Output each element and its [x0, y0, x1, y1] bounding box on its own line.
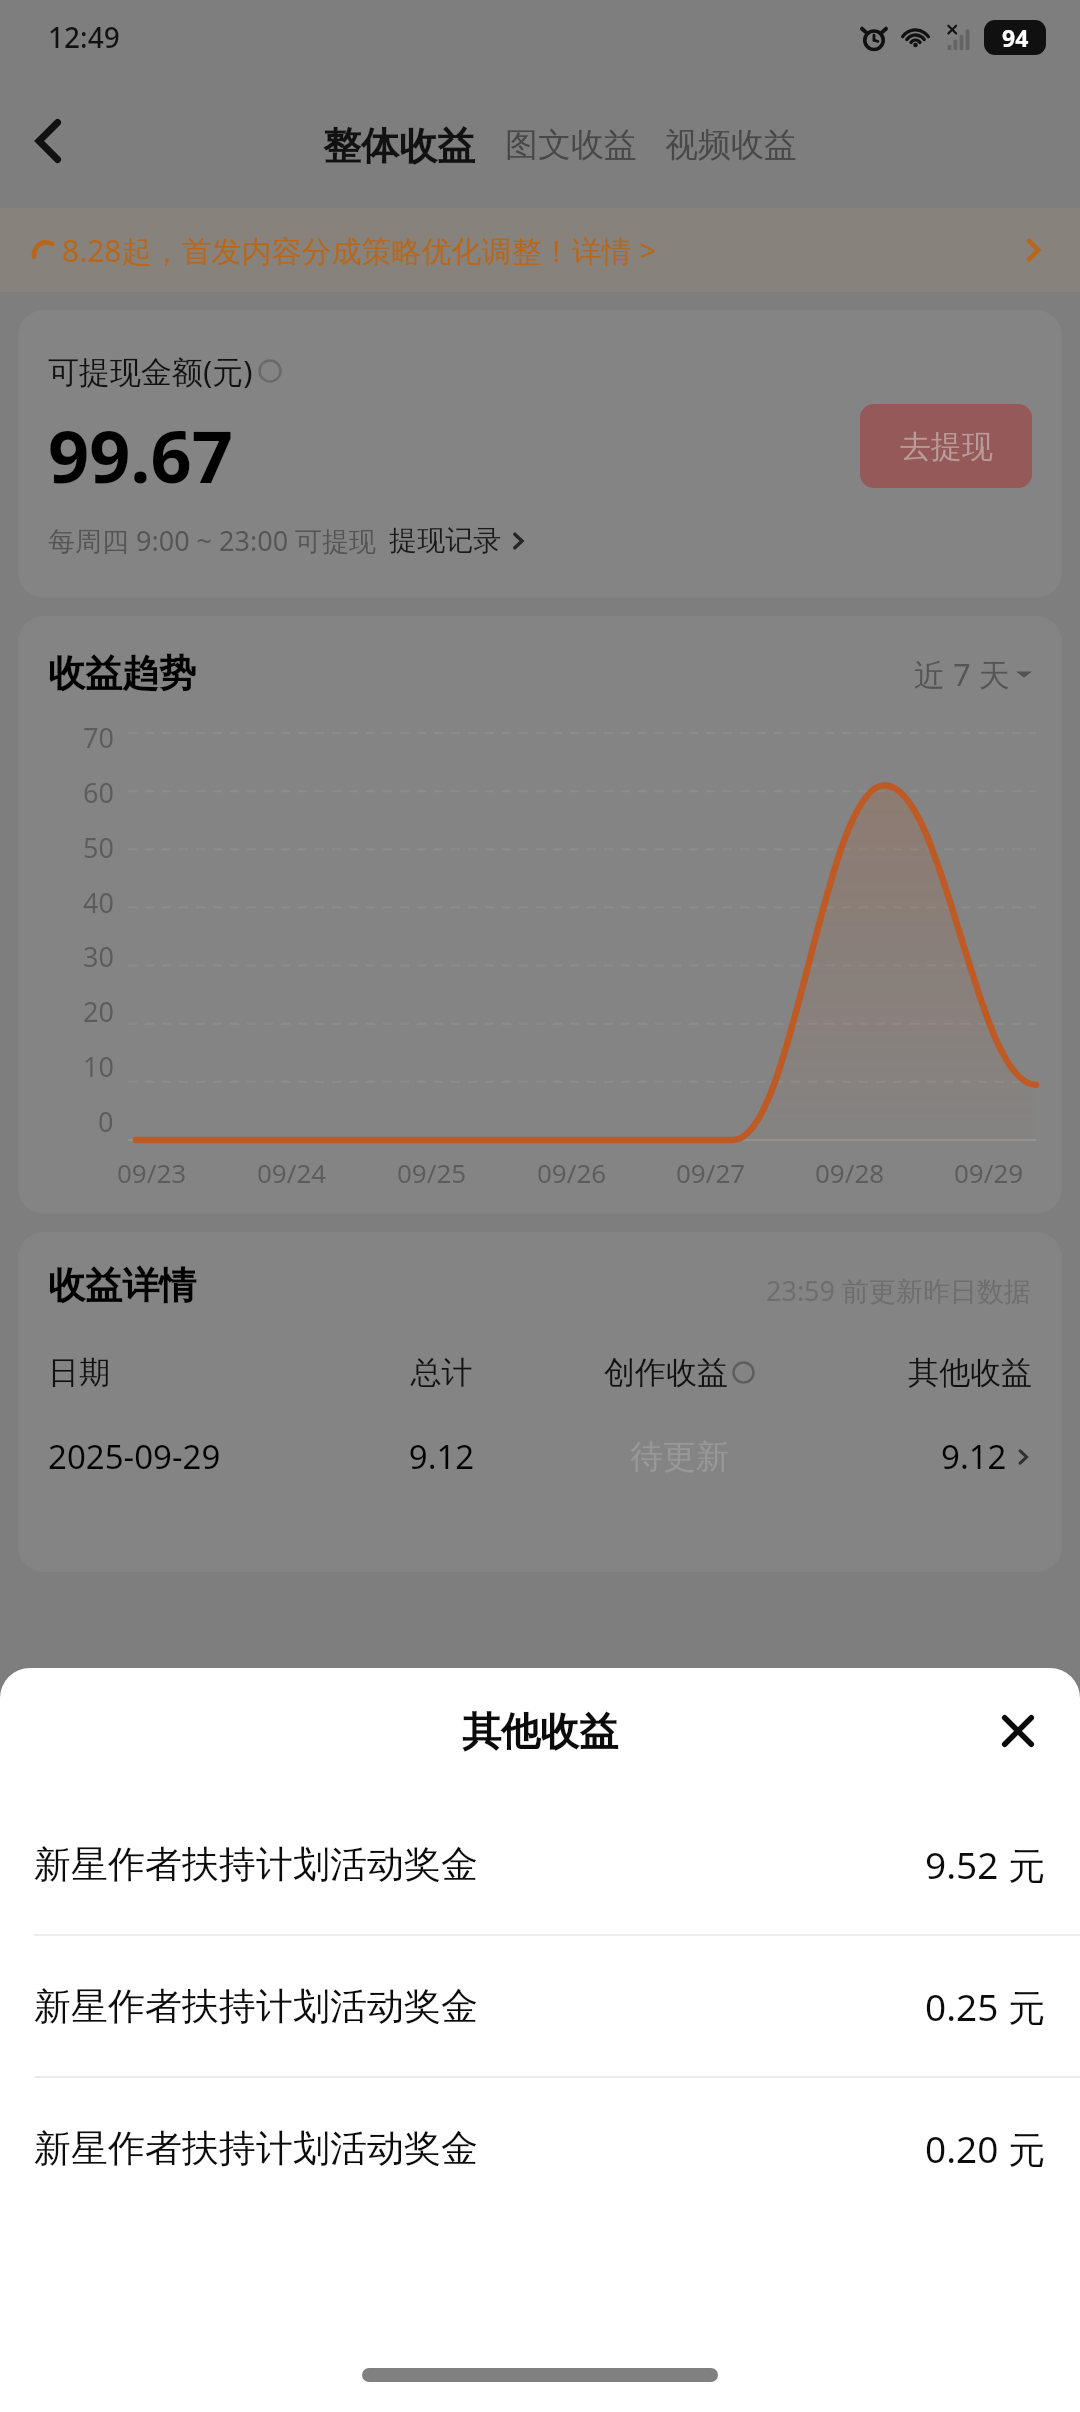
staticText: 其他收益	[814, 1353, 1032, 1392]
staticText: 60	[83, 774, 114, 811]
staticText: 40	[83, 884, 114, 921]
staticText: 09/27	[676, 1155, 746, 1190]
staticText: 收益详情	[48, 1262, 196, 1309]
staticText: 去提现	[900, 427, 993, 466]
staticText: 视频收益	[665, 124, 797, 166]
button[interactable]: 提现记录	[389, 523, 528, 558]
staticText: 50	[83, 829, 114, 866]
staticText: 0.20 元	[925, 2123, 1046, 2174]
staticText: 30	[83, 938, 114, 975]
staticText: 日期	[48, 1353, 338, 1392]
staticText: 2025-09-29	[48, 1434, 338, 1479]
staticText: 新星作者扶持计划活动奖金	[34, 2125, 478, 2172]
button[interactable]: 新星作者扶持计划活动奖金	[0, 1936, 1080, 2076]
staticText: 20	[83, 993, 114, 1030]
button[interactable]: 图文收益	[499, 120, 643, 170]
button[interactable]: 近 7 天	[914, 653, 1032, 695]
staticText: 总计	[338, 1353, 545, 1392]
button[interactable]: Close	[980, 1693, 1056, 1769]
staticText: 10	[83, 1048, 114, 1085]
button[interactable]: 视频收益	[659, 120, 803, 170]
button[interactable]: 8.28起，首发内容分成策略优化调整！详情 >	[0, 208, 1080, 292]
staticText: 70	[83, 719, 114, 756]
staticText: 09/25	[397, 1155, 467, 1190]
staticText: 新星作者扶持计划活动奖金	[34, 1841, 478, 1888]
staticText: 9.12	[338, 1434, 545, 1479]
staticText: 收益趋势	[48, 650, 196, 697]
button[interactable]: 新星作者扶持计划活动奖金	[0, 1794, 1080, 1934]
staticText: 图文收益	[505, 124, 637, 166]
button[interactable]: 整体收益	[317, 122, 481, 170]
staticText: 整体收益	[323, 122, 475, 170]
staticText: 提现记录	[389, 523, 501, 558]
staticText: 09/24	[257, 1155, 327, 1190]
staticText: 创作收益	[604, 1353, 728, 1392]
button[interactable]: 去提现	[860, 404, 1032, 488]
staticText: 0.25 元	[925, 1981, 1046, 2032]
staticText: 每周四 9:00 ~ 23:00 可提现	[48, 522, 377, 559]
staticText: 09/28	[815, 1155, 885, 1190]
staticText: 99.67	[48, 406, 233, 504]
staticText: 近 7 天	[914, 653, 1010, 695]
staticText: 9.12	[941, 1434, 1007, 1479]
staticText: 23:59 前更新昨日数据	[766, 1272, 1032, 1309]
staticText: 09/29	[954, 1155, 1024, 1190]
staticText: 其他收益	[462, 1707, 618, 1756]
button[interactable]: 2025-09-29	[48, 1434, 1032, 1479]
staticText: 9.52 元	[925, 1839, 1046, 1890]
staticText: 可提现金额(元)	[48, 350, 253, 392]
staticText: 09/23	[117, 1155, 187, 1190]
staticText: 12:49	[48, 18, 120, 56]
staticText: 8.28起，首发内容分成策略优化调整！详情 >	[62, 230, 657, 271]
staticText: 新星作者扶持计划活动奖金	[34, 1983, 478, 2030]
button[interactable]: 新星作者扶持计划活动奖金	[0, 2078, 1080, 2218]
staticText: 94	[1002, 22, 1029, 53]
staticText: 0	[98, 1103, 114, 1140]
staticText: 待更新	[545, 1436, 814, 1478]
staticText: 09/26	[537, 1155, 607, 1190]
button[interactable]: Back	[0, 91, 100, 191]
